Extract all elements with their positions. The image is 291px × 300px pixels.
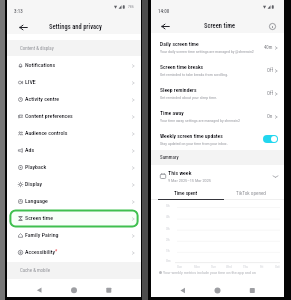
button[interactable]: Notifications [7, 57, 141, 74]
button[interactable]: Daily screen time [151, 36, 284, 59]
staticText: 3:13 [14, 8, 23, 14]
staticText: 1h [166, 249, 170, 253]
staticText: Sleep reminders [160, 87, 197, 94]
staticText: On [267, 114, 273, 120]
staticText: Your daily screen time settings are mana… [160, 49, 254, 54]
button[interactable]: LIVE [7, 74, 141, 91]
staticText: Time spent [174, 190, 198, 196]
staticText: Display [25, 181, 43, 188]
staticText: 5h [166, 204, 170, 208]
button[interactable]: Weekly screen time updates [151, 128, 284, 150]
button[interactable]: Back [159, 20, 171, 32]
staticText: 9 Mar 2025–15 Mar 2025 [168, 178, 211, 183]
button[interactable]: Family Pairing [7, 227, 141, 244]
staticText: Settings and privacy [49, 23, 102, 31]
button[interactable]: Info [266, 20, 278, 32]
staticText: Playback [25, 164, 47, 171]
staticText: 3h [166, 227, 170, 231]
staticText: Screen time breaks [160, 64, 204, 71]
staticText: Daily screen time [160, 41, 199, 48]
staticText: Content & display [20, 45, 54, 51]
staticText: * [55, 248, 58, 254]
staticText: Content preferences [25, 113, 73, 120]
staticText: 0m [166, 259, 171, 263]
staticText: Your time away settings are managed by s… [160, 118, 240, 123]
button[interactable]: Screen time [7, 210, 141, 227]
staticText: 40m [264, 45, 273, 51]
button[interactable]: Activity centre [7, 91, 141, 108]
staticText: Thu [243, 265, 249, 269]
button[interactable] [151, 187, 217, 200]
staticText: Fri [260, 265, 264, 269]
staticText: Summary [160, 154, 179, 160]
staticText: Your weekly metrics include your time on… [163, 270, 256, 275]
staticText: Get reminded about your sleep time. [160, 95, 218, 100]
staticText: 2h [166, 238, 170, 242]
staticText: LIVE [25, 79, 36, 86]
staticText: Language [25, 198, 48, 205]
staticText: Mon [194, 265, 200, 269]
staticText: Wed [226, 265, 232, 269]
staticText: Audience controls [25, 130, 68, 137]
staticText: Tue [211, 265, 216, 269]
staticText: 4h [166, 215, 170, 219]
staticText: Off [267, 91, 273, 97]
staticText: Accessibility [25, 249, 56, 256]
staticText: Time away [160, 110, 184, 117]
button[interactable]: Back [17, 21, 29, 33]
staticText: Notifications [25, 62, 56, 69]
button[interactable]: Screen time breaks [151, 59, 284, 82]
button[interactable]: Playback [7, 159, 141, 176]
button[interactable]: Language [7, 193, 141, 210]
button[interactable]: Time away [151, 105, 284, 128]
staticText: Ads [25, 147, 35, 154]
staticText: 14:00 [158, 8, 170, 14]
button[interactable]: Sleep reminders [151, 82, 284, 105]
button[interactable]: Audience controls [7, 125, 141, 142]
button[interactable]: Content preferences [7, 108, 141, 125]
button[interactable]: This week [151, 165, 284, 187]
staticText: Sat [275, 265, 280, 269]
button[interactable]: Display [7, 176, 141, 193]
staticText: Activity centre [25, 96, 60, 103]
button[interactable]: Accessibility [7, 244, 141, 261]
staticText: Family Pairing [25, 232, 59, 239]
button[interactable]: Ads [7, 142, 141, 159]
staticText: Cache & mobile [20, 267, 51, 273]
staticText: TikTok opened [236, 190, 266, 196]
staticText: Screen time [204, 22, 236, 30]
staticText: Weekly screen time updates [160, 133, 223, 140]
staticText: Screen time [25, 215, 54, 222]
staticText: This week [168, 170, 192, 177]
button[interactable] [217, 187, 284, 200]
staticText: 76% [128, 5, 134, 9]
staticText: Stay updated on your time from your inbo… [160, 141, 228, 146]
staticText: Get reminded to take breaks from scrolli… [160, 72, 229, 77]
staticText: Sun [177, 265, 183, 269]
staticText: Off [267, 68, 273, 74]
